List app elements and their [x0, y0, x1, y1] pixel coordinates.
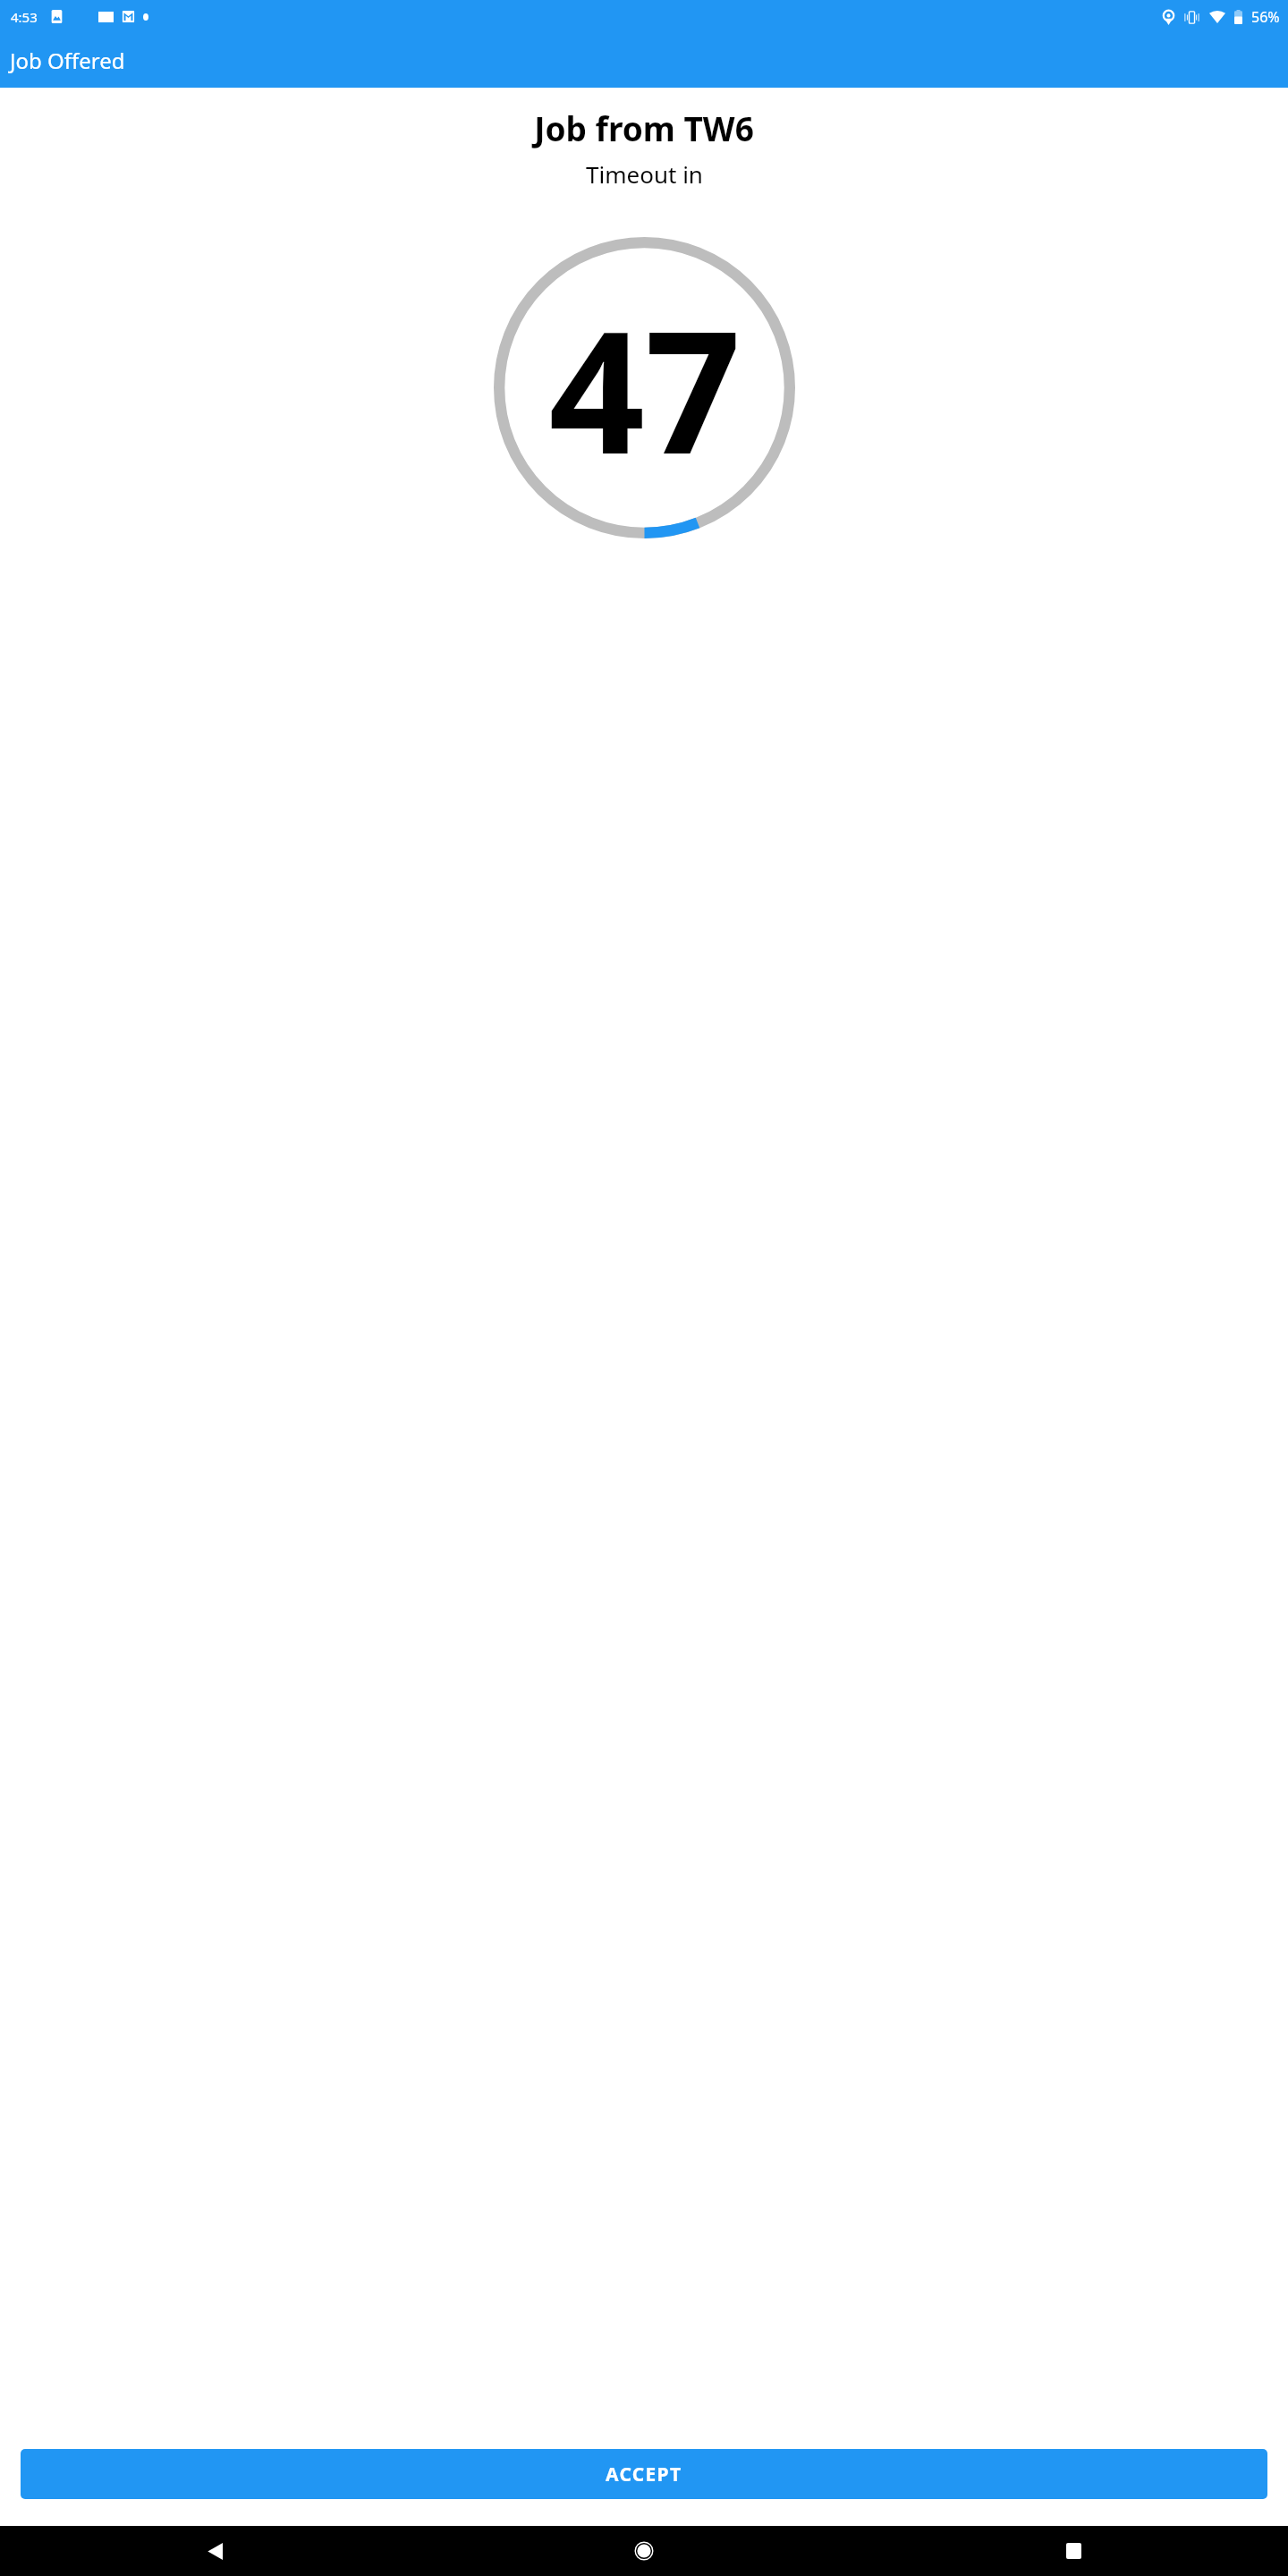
- staticText: Job from TW6: [534, 106, 754, 150]
- staticText: Job Offered: [10, 46, 125, 75]
- button[interactable]: Back: [0, 2526, 429, 2576]
- staticText: 47: [548, 274, 741, 503]
- staticText: 56%: [1251, 7, 1280, 27]
- staticText: ACCEPT: [606, 2462, 682, 2487]
- staticText: Timeout in: [586, 158, 703, 190]
- button[interactable]: Recents: [859, 2526, 1288, 2576]
- staticText: 4:53: [11, 8, 38, 26]
- button[interactable]: Home: [429, 2526, 859, 2576]
- button[interactable]: ACCEPT: [21, 2449, 1267, 2499]
